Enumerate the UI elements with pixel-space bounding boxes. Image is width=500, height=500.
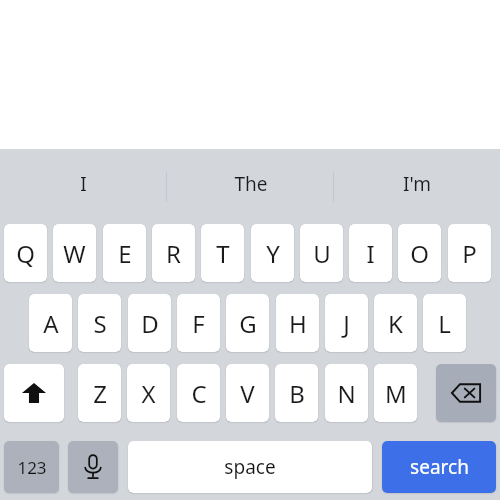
button[interactable]: E <box>103 224 146 282</box>
button[interactable]: V <box>226 364 269 422</box>
staticText: The <box>234 171 268 197</box>
staticText: M <box>385 377 407 410</box>
staticText: L <box>438 307 451 340</box>
button[interactable]: Shift <box>4 364 64 422</box>
staticText: J <box>343 307 350 340</box>
button[interactable]: Backspace <box>436 364 496 422</box>
button[interactable]: space <box>128 441 372 493</box>
button[interactable]: J <box>325 294 368 352</box>
button[interactable]: C <box>177 364 220 422</box>
button[interactable]: T <box>201 224 244 282</box>
button[interactable]: H <box>276 294 319 352</box>
button[interactable]: D <box>128 294 171 352</box>
button[interactable]: B <box>275 364 318 422</box>
staticText: 123 <box>17 456 47 479</box>
button[interactable]: P <box>448 224 491 282</box>
staticText: P <box>462 237 477 270</box>
staticText: Y <box>266 237 280 270</box>
staticText: S <box>93 307 107 340</box>
staticText: D <box>141 307 159 340</box>
staticText: O <box>410 237 429 270</box>
button[interactable]: O <box>398 224 441 282</box>
staticText: Z <box>93 377 107 410</box>
staticText: E <box>118 237 132 270</box>
staticText: B <box>289 377 305 410</box>
button[interactable]: F <box>177 294 220 352</box>
button[interactable]: search <box>382 441 496 493</box>
staticText: K <box>388 307 403 340</box>
button[interactable]: X <box>127 364 170 422</box>
staticText: I <box>80 171 87 197</box>
button[interactable]: Z <box>78 364 121 422</box>
staticText: V <box>240 377 255 410</box>
staticText: G <box>239 307 257 340</box>
button[interactable]: L <box>423 294 466 352</box>
staticText: space <box>224 454 276 480</box>
staticText: C <box>191 377 207 410</box>
button[interactable]: G <box>226 294 269 352</box>
button[interactable]: I <box>0 149 167 218</box>
button[interactable]: I'm <box>333 149 500 218</box>
staticText: F <box>192 307 205 340</box>
staticText: H <box>289 307 307 340</box>
staticText: I <box>366 237 375 270</box>
staticText: X <box>141 377 156 410</box>
staticText: W <box>63 237 86 270</box>
button[interactable]: U <box>300 224 343 282</box>
staticText: R <box>166 237 181 270</box>
staticText: A <box>43 307 59 340</box>
staticText: Q <box>16 237 35 270</box>
button[interactable]: 123 <box>4 441 59 493</box>
button[interactable]: M <box>374 364 417 422</box>
staticText: U <box>313 237 331 270</box>
button[interactable]: Voice input <box>68 441 118 493</box>
staticText: search <box>410 454 469 480</box>
staticText: I'm <box>403 171 431 197</box>
button[interactable]: Q <box>4 224 47 282</box>
button[interactable]: A <box>29 294 72 352</box>
button[interactable]: The <box>167 149 334 218</box>
button[interactable]: Y <box>251 224 294 282</box>
button[interactable]: R <box>152 224 195 282</box>
staticText: N <box>337 377 356 410</box>
button[interactable]: K <box>374 294 417 352</box>
button[interactable]: S <box>78 294 121 352</box>
button[interactable]: I <box>349 224 392 282</box>
button[interactable]: W <box>53 224 96 282</box>
staticText: T <box>216 237 230 270</box>
button[interactable]: N <box>325 364 368 422</box>
